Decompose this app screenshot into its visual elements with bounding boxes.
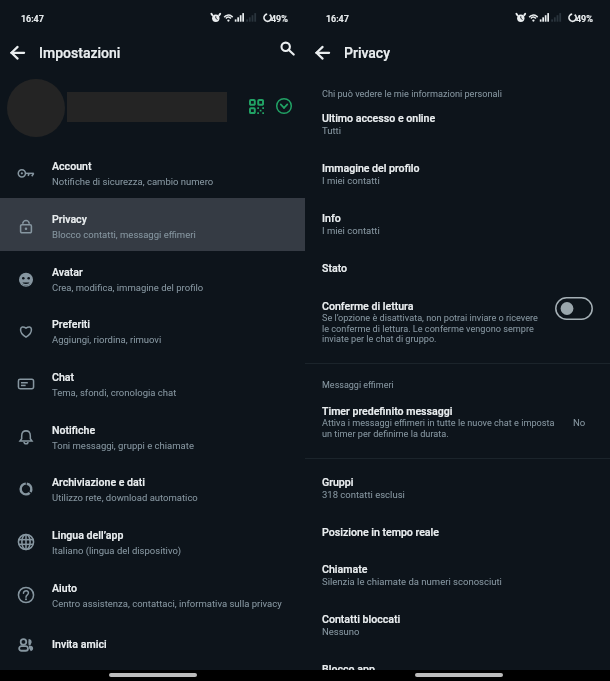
staticText: Aiuto <box>52 582 78 594</box>
staticText: Crea, modifica, immagine del profilo <box>52 282 204 293</box>
button[interactable]: Contatti bloccati <box>305 613 610 653</box>
staticText: Conferme di lettura <box>322 300 414 312</box>
staticText: Chiamate <box>322 563 368 575</box>
staticText: Aggiungi, riordina, rimuovi <box>52 334 162 345</box>
staticText: Chat <box>52 371 75 383</box>
staticText: 49% <box>576 14 593 25</box>
staticText: Tutti <box>322 125 341 136</box>
staticText: Lingua dell’app <box>52 529 124 541</box>
button[interactable]: Preferiti <box>0 303 305 356</box>
staticText: Privacy <box>344 45 391 61</box>
staticText: Silenzia le chiamate da numeri sconosciu… <box>322 576 502 587</box>
staticText: I miei contatti <box>322 175 380 186</box>
button[interactable]: Immagine del profilo <box>305 162 610 202</box>
button[interactable]: Expand profile <box>272 94 296 118</box>
button[interactable]: Conferme di lettura toggle <box>555 297 593 320</box>
staticText: 318 contatti esclusi <box>322 489 405 500</box>
staticText: Invita amici <box>52 638 107 650</box>
staticText: Blocco contatti, messaggi effimeri <box>52 229 196 240</box>
staticText: Se l’opzione è disattivata, non potrai i… <box>322 313 538 344</box>
staticText: Preferiti <box>52 318 91 330</box>
button[interactable]: Gruppi <box>305 476 610 516</box>
staticText: Centro assistenza, contattaci, informati… <box>52 598 282 609</box>
button[interactable]: Chat <box>0 356 305 409</box>
button[interactable]: Stato <box>305 262 610 286</box>
button[interactable]: Info <box>305 212 610 252</box>
staticText: 16:47 <box>326 14 349 25</box>
staticText: Immagine del profilo <box>322 162 420 174</box>
staticText: Archiviazione e dati <box>52 476 146 488</box>
staticText: Italiano (lingua del dispositivo) <box>52 545 182 556</box>
staticText: I miei contatti <box>322 225 380 236</box>
staticText: Utilizzo rete, download automatico <box>52 492 198 503</box>
staticText: Contatti bloccati <box>322 613 401 625</box>
button[interactable]: Aiuto <box>0 567 305 620</box>
staticText: No <box>573 417 586 428</box>
staticText: Avatar <box>52 266 83 278</box>
staticText: Notifiche <box>52 424 96 436</box>
staticText: Tema, sfondi, cronologia chat <box>52 387 177 398</box>
button[interactable]: Notifiche <box>0 409 305 462</box>
staticText: Account <box>52 160 92 172</box>
button[interactable]: Timer predefinito messaggi <box>305 402 610 442</box>
staticText: Notifiche di sicurezza, cambio numero <box>52 176 214 187</box>
button[interactable]: Ultimo accesso e online <box>305 112 610 152</box>
button[interactable]: Archiviazione e dati <box>0 461 305 514</box>
staticText: Toni messaggi, gruppi e chiamate <box>52 440 194 451</box>
staticText: Gruppi <box>322 476 354 488</box>
button[interactable]: Search <box>274 37 300 63</box>
staticText: Stato <box>322 262 348 274</box>
staticText: 16:47 <box>21 14 44 25</box>
staticText: 49% <box>271 14 288 25</box>
button[interactable]: Conferme di lettura <box>305 297 610 345</box>
button[interactable]: QR code <box>0 75 305 143</box>
staticText: Privacy <box>52 213 87 225</box>
button[interactable]: Back <box>3 37 33 67</box>
button[interactable]: Back <box>308 37 338 67</box>
button[interactable]: Chiamate <box>305 563 610 603</box>
button[interactable]: QR code <box>244 94 268 118</box>
staticText: Messaggi effimeri <box>322 380 394 391</box>
staticText: Impostazioni <box>39 45 121 61</box>
button[interactable]: Invita amici <box>0 620 305 666</box>
staticText: Timer predefinito messaggi <box>322 405 453 417</box>
button[interactable]: Avatar <box>0 251 305 304</box>
button[interactable]: Lingua dell’app <box>0 514 305 567</box>
button[interactable]: Privacy <box>0 198 305 251</box>
staticText: Blocco app <box>322 663 375 675</box>
button[interactable]: Account <box>0 145 305 198</box>
staticText: Attiva i messaggi effimeri in tutte le n… <box>322 418 555 439</box>
button[interactable]: Blocco app <box>305 663 610 681</box>
staticText: Ultimo accesso e online <box>322 112 436 124</box>
staticText: Chi può vedere le mie informazioni perso… <box>322 89 502 100</box>
staticText: Nessuno <box>322 626 360 637</box>
staticText: Posizione in tempo reale <box>322 526 439 538</box>
staticText: Info <box>322 212 341 224</box>
button[interactable]: Posizione in tempo reale <box>305 526 610 550</box>
